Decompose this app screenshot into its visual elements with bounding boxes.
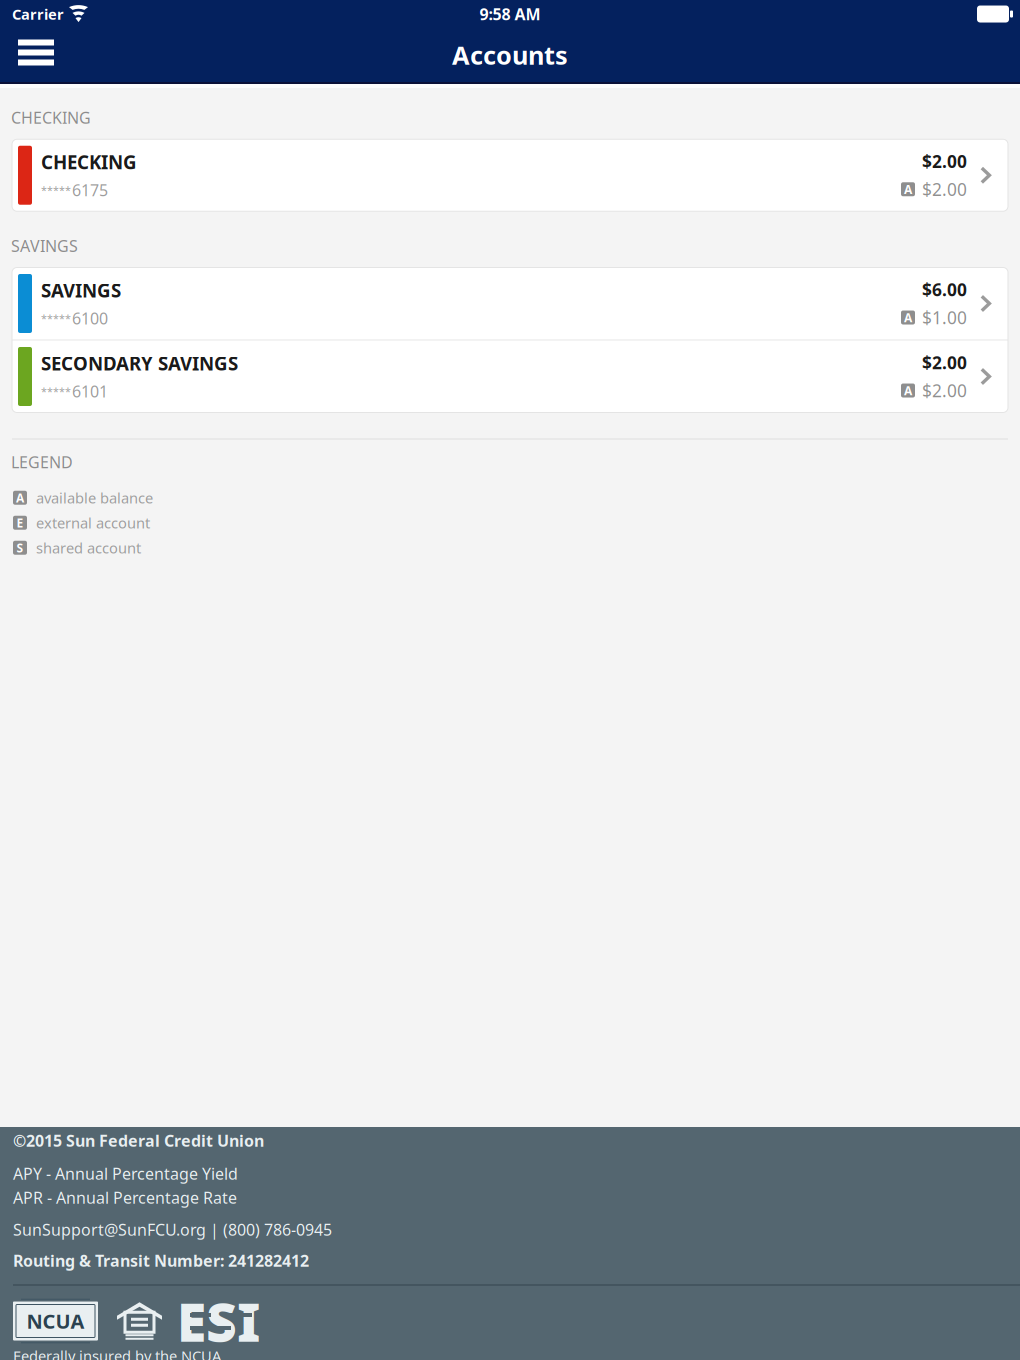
staticText: $2.00	[922, 150, 967, 173]
staticText: *****	[41, 183, 71, 197]
staticText: A	[904, 309, 912, 325]
staticText: Federally insured by the NCUA	[13, 1346, 221, 1360]
staticText: 6100	[72, 308, 108, 329]
staticText: $2.00	[922, 351, 967, 374]
staticText: 6175	[72, 179, 108, 201]
staticText: $2.00	[922, 178, 967, 201]
staticText: SunSupport@SunFCU.org | (800) 786-0945	[13, 1219, 332, 1240]
staticText: external account	[36, 513, 150, 532]
staticText: CHECKING	[11, 107, 91, 128]
staticText: *****	[41, 384, 71, 398]
staticText: APY - Annual Percentage Yield	[13, 1163, 238, 1184]
button[interactable]: SAVINGS	[12, 267, 1008, 339]
staticText: S	[16, 540, 23, 556]
staticText: 6101	[72, 381, 108, 402]
staticText: $6.00	[922, 278, 967, 301]
staticText: SAVINGS	[41, 278, 121, 303]
staticText: shared account	[36, 538, 141, 557]
button[interactable]: CHECKING	[12, 139, 1008, 211]
button[interactable]: SECONDARY SAVINGS	[12, 340, 1008, 412]
staticText: CHECKING	[41, 150, 137, 174]
staticText: Accounts	[452, 38, 568, 72]
staticText: NCUA	[26, 1308, 84, 1334]
staticText: APR - Annual Percentage Rate	[13, 1187, 237, 1208]
staticText: SECONDARY SAVINGS	[41, 351, 238, 376]
staticText: available balance	[36, 488, 153, 507]
staticText: ©2015 Sun Federal Credit Union	[13, 1130, 264, 1151]
staticText: A	[16, 490, 24, 506]
staticText: E	[16, 515, 23, 531]
staticText: Carrier	[12, 4, 64, 24]
staticText: 9:58 AM	[479, 3, 540, 25]
staticText: ESI	[177, 1286, 260, 1356]
staticText: Routing & Transit Number: 241282412	[13, 1250, 309, 1271]
staticText: $2.00	[922, 379, 967, 402]
staticText: $1.00	[922, 306, 967, 329]
staticText: LEGEND	[11, 451, 73, 473]
staticText: SAVINGS	[11, 235, 78, 256]
staticText: A	[904, 382, 912, 398]
staticText: A	[904, 181, 912, 197]
button[interactable]: Menu	[0, 27, 78, 82]
staticText: *****	[41, 311, 71, 325]
